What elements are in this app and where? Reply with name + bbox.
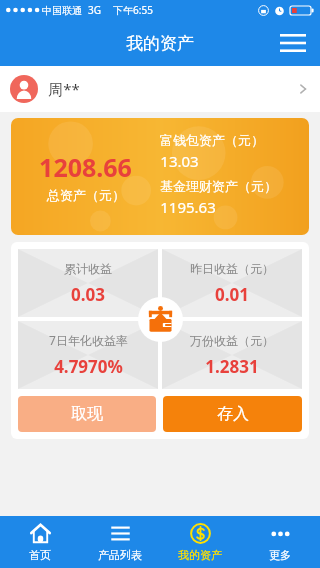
button[interactable]: 产品列表: [80, 516, 160, 568]
staticText: 累计收益: [64, 261, 112, 276]
button[interactable]: 首页: [0, 516, 80, 568]
staticText: 我的资产: [178, 548, 222, 562]
button[interactable]: Menu: [276, 26, 310, 60]
staticText: 0.01: [215, 283, 249, 306]
staticText: 7日年化收益率: [49, 332, 128, 348]
button[interactable]: 取现: [18, 396, 156, 432]
staticText: 周**: [48, 79, 80, 99]
staticText: 基金理财资产（元）: [160, 178, 277, 194]
button[interactable]: 1208.66: [11, 118, 309, 235]
button[interactable]: 存入: [163, 396, 302, 432]
staticText: 首页: [29, 548, 51, 562]
staticText: 产品列表: [98, 548, 142, 562]
button[interactable]: 更多: [240, 516, 320, 568]
staticText: 富钱包资产（元）: [160, 132, 264, 148]
staticText: 中国联通: [42, 4, 82, 17]
button[interactable]: 万份收益（元）: [162, 321, 302, 389]
button[interactable]: 昨日收益（元）: [162, 249, 302, 317]
staticText: 万份收益（元）: [190, 333, 274, 348]
staticText: 1195.63: [160, 197, 216, 217]
staticText: 1.2831: [205, 355, 259, 378]
staticText: 4.7970%: [54, 355, 123, 378]
button[interactable]: 周**: [0, 66, 320, 112]
button[interactable]: 累计收益: [18, 249, 158, 317]
staticText: 我的资产: [126, 33, 194, 54]
button[interactable]: 我的资产: [160, 516, 240, 568]
button[interactable]: 7日年化收益率: [18, 321, 158, 389]
staticText: 取现: [71, 404, 103, 424]
staticText: 总资产（元）: [47, 187, 125, 203]
staticText: 昨日收益（元）: [190, 261, 274, 276]
staticText: 1208.66: [39, 150, 132, 184]
staticText: 更多: [269, 548, 291, 562]
staticText: 下午6:55: [113, 3, 153, 17]
staticText: 13.03: [160, 151, 199, 171]
staticText: 存入: [217, 404, 249, 424]
staticText: 3G: [88, 3, 101, 17]
staticText: 0.03: [71, 283, 105, 306]
